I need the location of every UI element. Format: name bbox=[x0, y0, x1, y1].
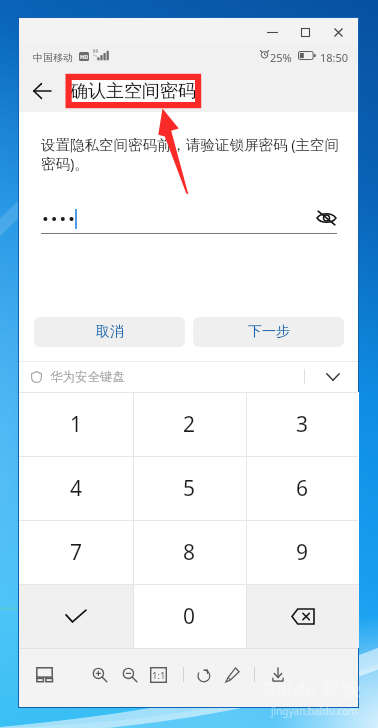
staticText: 取消 bbox=[96, 323, 124, 341]
button[interactable]: Zoom in bbox=[91, 666, 108, 683]
staticText: 设置隐私空间密码前，请验证锁屏密码 (主空间密码)。 bbox=[41, 134, 340, 173]
button[interactable]: 取消 bbox=[34, 317, 185, 347]
staticText: 2 bbox=[183, 410, 196, 439]
button[interactable]: 5 bbox=[133, 456, 246, 520]
staticText: 1 bbox=[70, 410, 83, 439]
button[interactable]: Show password bbox=[313, 205, 339, 231]
staticText: 9 bbox=[296, 538, 309, 567]
button[interactable] bbox=[246, 584, 359, 648]
staticText: 4 bbox=[70, 474, 83, 503]
staticText: 3 bbox=[296, 410, 309, 439]
staticText: 18:50 bbox=[320, 50, 349, 65]
button[interactable]: 1 bbox=[19, 392, 133, 456]
button[interactable]: 9 bbox=[246, 520, 359, 584]
button[interactable]: 0 bbox=[133, 584, 246, 648]
staticText: 中国移动 bbox=[33, 51, 73, 64]
staticText: 华为安全键盘 bbox=[50, 369, 125, 385]
button[interactable]: 4 bbox=[19, 456, 133, 520]
staticText: HD bbox=[80, 53, 89, 60]
button[interactable]: 下一步 bbox=[193, 317, 344, 347]
button[interactable]: Zoom out bbox=[121, 666, 138, 683]
button[interactable]: 3 bbox=[246, 392, 359, 456]
staticText: 确认主空间密码 bbox=[70, 80, 196, 103]
staticText: 8 bbox=[183, 538, 196, 567]
button[interactable]: 7 bbox=[19, 520, 133, 584]
staticText: 0 bbox=[183, 602, 196, 631]
button[interactable]: Minimize bbox=[256, 20, 289, 44]
button[interactable]: Collapse keyboard bbox=[321, 365, 345, 389]
button[interactable]: 6 bbox=[246, 456, 359, 520]
button[interactable]: Screen bbox=[36, 666, 53, 683]
button[interactable]: 8 bbox=[133, 520, 246, 584]
staticText: 25% bbox=[270, 50, 292, 65]
staticText: 6 bbox=[296, 474, 309, 503]
button[interactable]: 2 bbox=[133, 392, 246, 456]
staticText: 5 bbox=[183, 474, 196, 503]
button[interactable]: Close bbox=[322, 20, 355, 44]
button[interactable]: Maximize bbox=[289, 20, 322, 44]
button[interactable]: Actual size bbox=[150, 666, 167, 683]
staticText: 7 bbox=[70, 538, 83, 567]
staticText: Baidu 经验 bbox=[263, 676, 360, 702]
staticText: jingyan.baidu.com bbox=[271, 704, 358, 718]
staticText: 下一步 bbox=[248, 323, 290, 341]
button[interactable]: Refresh bbox=[196, 666, 213, 683]
staticText: 1:1 bbox=[152, 669, 166, 682]
button[interactable]: Download bbox=[269, 666, 286, 683]
button[interactable]: Draw bbox=[224, 666, 241, 683]
button[interactable]: Back bbox=[27, 76, 57, 106]
button[interactable] bbox=[19, 584, 133, 648]
